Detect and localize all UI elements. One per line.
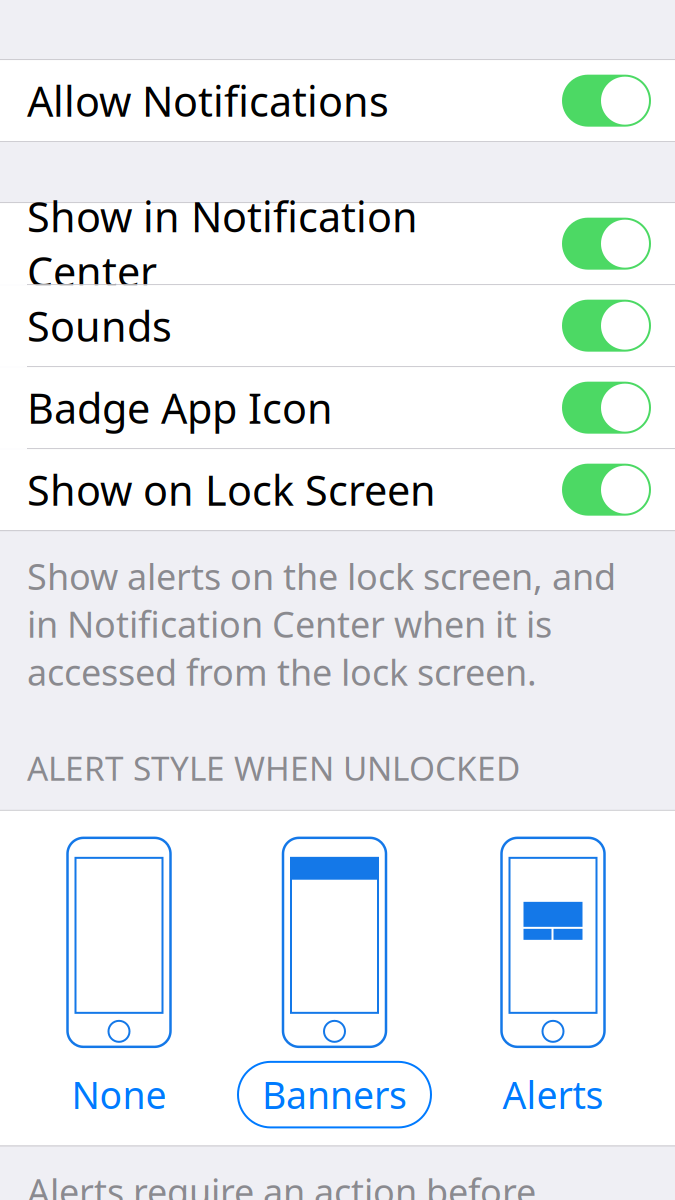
button[interactable]: Alerts [478,838,627,1127]
staticText: Alerts require an action before proceedi… [27,1167,609,1200]
staticText: Show alerts on the lock screen, and in N… [27,552,616,696]
staticText: Badge App Icon [27,380,333,435]
button[interactable]: Banners [238,838,431,1127]
staticText: None [71,1070,166,1119]
button[interactable]: Badge App Icon [0,367,675,448]
staticText: Allow Notifications [27,73,389,128]
staticText: Show in Notification Center [27,189,418,299]
button[interactable]: Show in Notification Center [0,203,675,284]
staticText: Banners [262,1070,407,1119]
button[interactable]: Sounds [0,285,675,366]
button[interactable]: Allow Notifications [0,60,675,141]
staticText: Show on Lock Screen [27,462,436,517]
button[interactable]: Show on Lock Screen [0,449,675,530]
staticText: ALERT STYLE WHEN UNLOCKED [27,746,520,790]
staticText: Alerts [502,1070,603,1119]
button[interactable]: None [47,838,190,1127]
staticText: Sounds [27,298,172,353]
